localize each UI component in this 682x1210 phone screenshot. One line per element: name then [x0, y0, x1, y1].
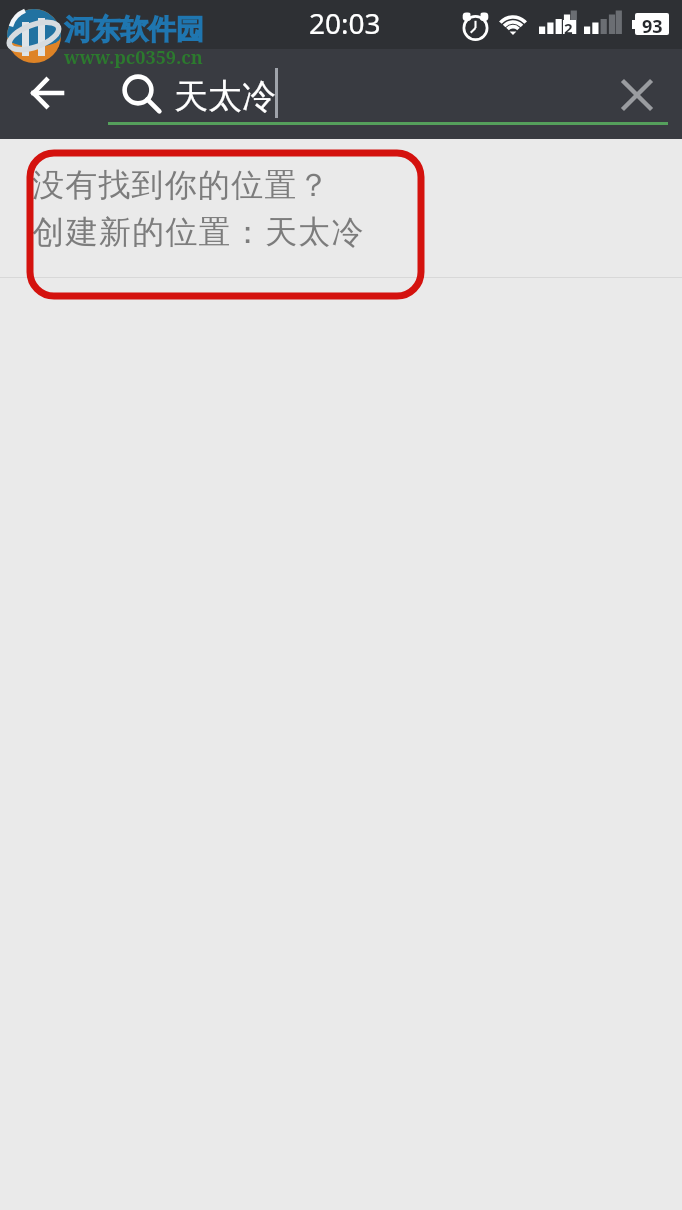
button[interactable]: Clear search — [606, 64, 668, 126]
button[interactable]: 天太冷 — [108, 57, 603, 123]
staticText: 93 — [642, 14, 663, 39]
staticText: 河东软件园 — [64, 12, 204, 47]
staticText: 2 — [564, 18, 573, 38]
staticText: 天太冷 — [174, 75, 276, 118]
button[interactable]: Back — [13, 59, 81, 127]
button[interactable]: 没有找到你的位置？ — [0, 139, 682, 277]
staticText: 20:03 — [309, 4, 381, 42]
staticText: 创建新的位置：天太冷 — [32, 212, 364, 252]
staticText: 没有找到你的位置？ — [32, 165, 331, 205]
staticText: www.pc0359.cn — [64, 45, 203, 70]
